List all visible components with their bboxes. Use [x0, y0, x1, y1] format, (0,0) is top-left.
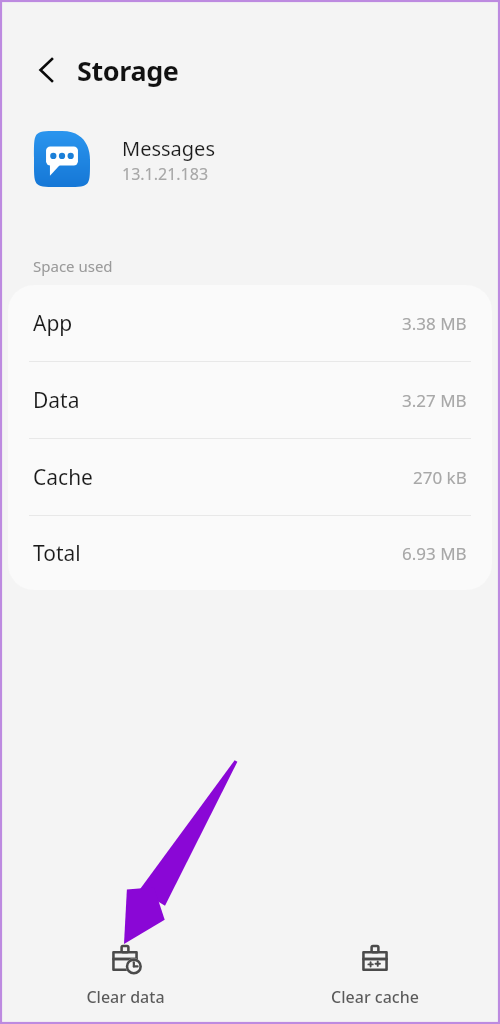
button[interactable]: Total: [8, 516, 492, 590]
staticText: Clear data: [86, 986, 165, 1008]
staticText: Total: [33, 539, 81, 568]
staticText: Cache: [33, 463, 93, 492]
staticText: Clear cache: [331, 986, 419, 1008]
button[interactable]: Cache: [8, 439, 492, 515]
staticText: 6.93 MB: [402, 542, 467, 565]
staticText: Data: [33, 386, 80, 415]
staticText: Storage: [77, 52, 179, 89]
staticText: App: [33, 309, 73, 338]
staticText: Space used: [33, 256, 113, 276]
button[interactable]: Clear data: [0, 944, 250, 1008]
button[interactable]: Back: [24, 48, 68, 92]
button[interactable]: App: [8, 285, 492, 361]
staticText: 3.27 MB: [402, 389, 467, 412]
button[interactable]: Data: [8, 362, 492, 438]
staticText: 13.1.21.183: [122, 163, 209, 185]
staticText: 3.38 MB: [402, 312, 467, 335]
button[interactable]: Clear cache: [250, 944, 500, 1008]
staticText: 270 kB: [413, 466, 467, 489]
staticText: Messages: [122, 135, 215, 162]
